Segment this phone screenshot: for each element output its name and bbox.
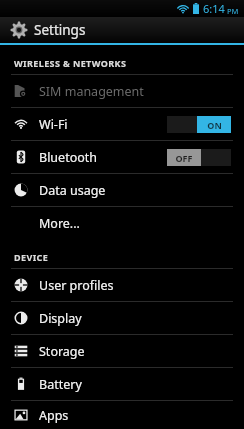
staticText: Battery [39, 376, 82, 393]
staticText: PM [227, 6, 239, 16]
button[interactable]: Battery [0, 368, 244, 400]
staticText: 6:14 [203, 1, 225, 16]
staticText: OFF [175, 152, 193, 164]
button[interactable]: Bluetooth [0, 141, 244, 173]
staticText: More... [39, 215, 80, 232]
button[interactable]: SIM management [0, 75, 244, 107]
staticText: SIM management [39, 83, 144, 100]
staticText: Data usage [39, 182, 106, 199]
staticText: Bluetooth [39, 149, 98, 166]
button[interactable]: More... [0, 207, 244, 239]
button[interactable]: User profiles [0, 269, 244, 301]
staticText: ON [207, 119, 222, 131]
button[interactable]: Data usage [0, 174, 244, 206]
staticText: Apps [39, 407, 69, 424]
button[interactable]: Wi-Fi [0, 108, 244, 140]
staticText: Wi-Fi [39, 116, 68, 133]
staticText: Storage [39, 343, 85, 360]
staticText: WIRELESS & NETWORKS [14, 57, 127, 69]
button[interactable]: Apps [0, 401, 244, 429]
button[interactable]: Settings [0, 17, 244, 43]
staticText: Display [39, 310, 82, 327]
button[interactable]: Switch off [167, 149, 231, 166]
staticText: DEVICE [14, 251, 49, 263]
button[interactable]: Storage [0, 335, 244, 367]
staticText: User profiles [39, 277, 114, 294]
staticText: Settings [34, 21, 86, 39]
button[interactable]: Switch on [167, 116, 231, 133]
button[interactable]: Display [0, 302, 244, 334]
